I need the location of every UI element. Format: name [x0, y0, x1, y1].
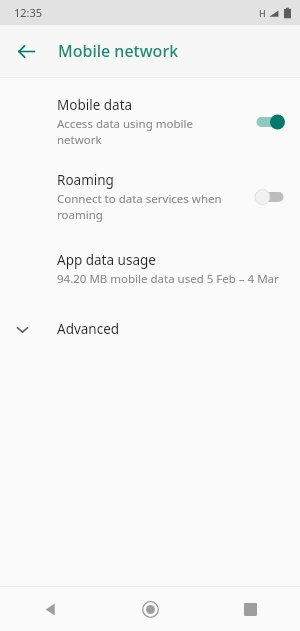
button[interactable]: App data usage: [0, 248, 300, 290]
staticText: H: [259, 7, 266, 19]
button[interactable]: Roaming: [0, 167, 300, 226]
staticText: App data usage: [57, 251, 156, 269]
staticText: Mobile data: [57, 96, 133, 114]
staticText: Roaming: [57, 171, 114, 189]
staticText: 94.20 MB mobile data used 5 Feb – 4 Mar: [57, 271, 279, 287]
button[interactable]: Back: [0, 587, 100, 631]
button[interactable]: Home: [100, 587, 200, 631]
staticText: Access data using mobile network: [57, 116, 193, 147]
button[interactable]: Toggle on: [253, 111, 287, 133]
button[interactable]: Recent apps: [200, 587, 300, 631]
button[interactable]: Mobile data: [0, 92, 300, 151]
staticText: Advanced: [57, 320, 120, 338]
button[interactable]: Back: [9, 34, 43, 68]
staticText: Connect to data services when roaming: [57, 191, 222, 222]
button[interactable]: Advanced: [0, 312, 300, 346]
staticText: Mobile network: [58, 40, 179, 62]
staticText: 12:35: [14, 5, 43, 20]
button[interactable]: Toggle off: [253, 186, 287, 208]
